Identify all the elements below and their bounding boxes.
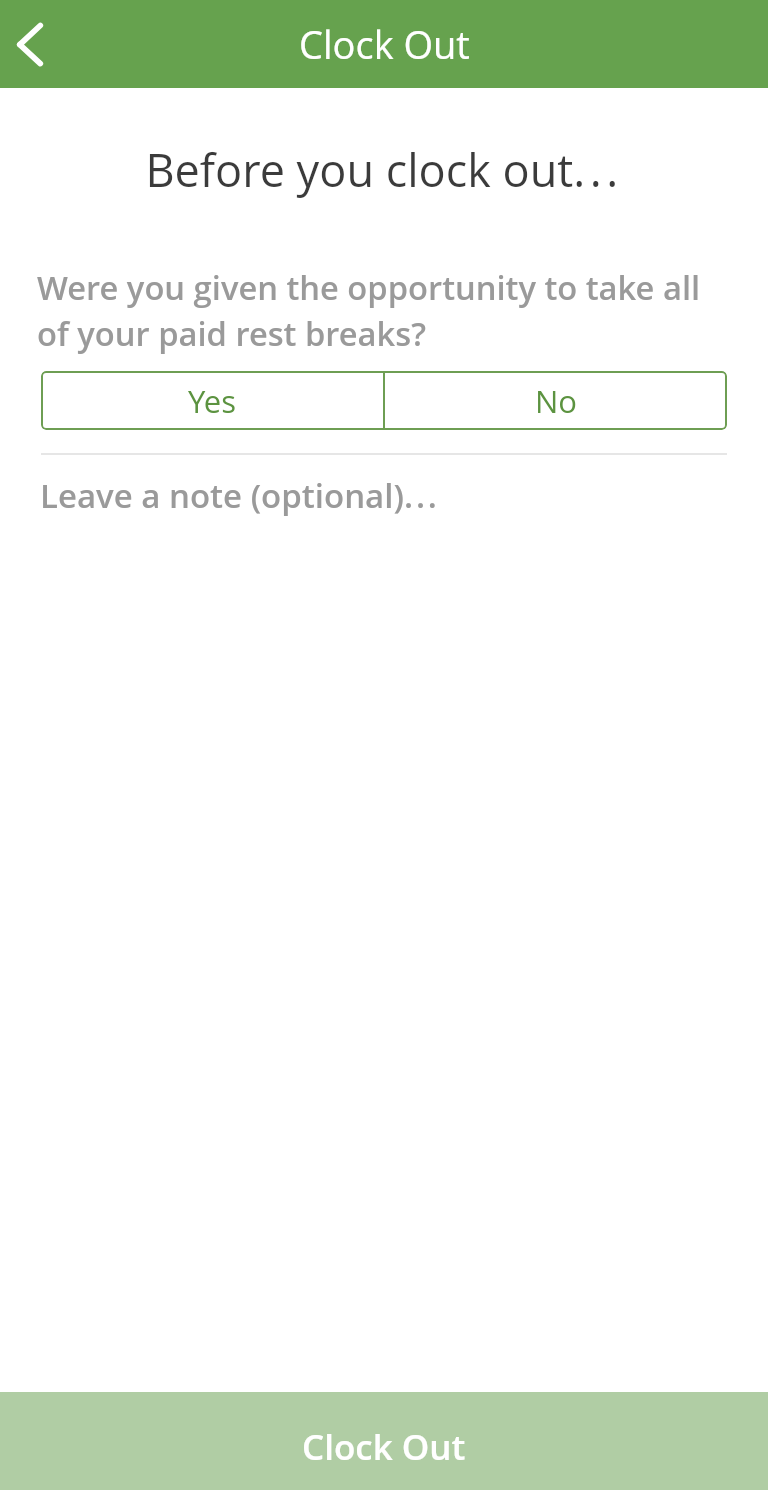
button[interactable]: Leave a note (optional)... xyxy=(0,473,768,518)
staticText: Clock Out xyxy=(302,1423,466,1471)
staticText: Were you given the opportunity to take a… xyxy=(37,265,731,356)
staticText: Leave a note (optional)... xyxy=(40,473,440,518)
staticText: Clock Out xyxy=(299,18,470,70)
button[interactable]: Yes xyxy=(41,371,383,430)
button[interactable]: No xyxy=(385,371,727,430)
staticText: Yes xyxy=(188,380,236,422)
button[interactable]: Clock Out xyxy=(0,1392,768,1490)
button[interactable]: Back xyxy=(0,0,88,88)
staticText: Before you clock out... xyxy=(0,139,768,200)
staticText: No xyxy=(535,380,578,422)
